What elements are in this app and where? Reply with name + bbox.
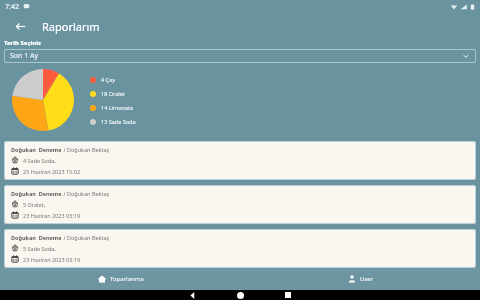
staticText: 25 Haziran 2023 15:02 <box>23 168 81 175</box>
staticText: / Doğukan Bektaş <box>62 190 110 197</box>
staticText: User <box>360 275 374 283</box>
staticText: Doğukan Deneme <box>11 190 62 197</box>
staticText: 4 Çay <box>101 76 115 83</box>
button[interactable]: Back <box>10 16 30 36</box>
button[interactable]: Doğukan Deneme <box>4 185 476 224</box>
button[interactable]: Doğukan Deneme <box>4 141 476 180</box>
staticText: Tarih Seçiniz <box>4 39 41 47</box>
staticText: 7:42 <box>5 2 19 12</box>
staticText: Doğukan Deneme <box>11 234 62 241</box>
staticText: 14 Limonata <box>101 104 134 111</box>
button[interactable]: Home <box>228 290 252 300</box>
button[interactable]: Son 1 Ay <box>4 49 476 63</box>
button[interactable]: User <box>341 272 380 286</box>
staticText: Toparlanma <box>110 275 144 283</box>
button[interactable]: Toparlanma <box>91 272 150 286</box>
staticText: 13 Sade Soda <box>101 118 136 125</box>
staticText: Son 1 Ay <box>10 51 39 61</box>
staticText: / Doğukan Bektaş <box>62 234 110 241</box>
staticText: Raporlarım <box>42 19 100 34</box>
staticText: 23 Haziran 2023 03:19 <box>23 212 81 219</box>
staticText: Doğukan Deneme <box>11 146 62 153</box>
staticText: 4 Sade Soda, <box>23 157 56 164</box>
staticText: / Doğukan Bektaş <box>62 146 110 153</box>
staticText: 5 Sade Soda, <box>23 245 56 252</box>
button[interactable]: Recents <box>276 290 300 300</box>
staticText: 18 Oralet <box>101 90 125 97</box>
button[interactable]: Doğukan Deneme <box>4 229 476 268</box>
staticText: 5 Oralet, <box>23 201 46 208</box>
staticText: 23 Haziran 2023 03:19 <box>23 256 81 263</box>
button[interactable]: Back <box>180 290 204 300</box>
